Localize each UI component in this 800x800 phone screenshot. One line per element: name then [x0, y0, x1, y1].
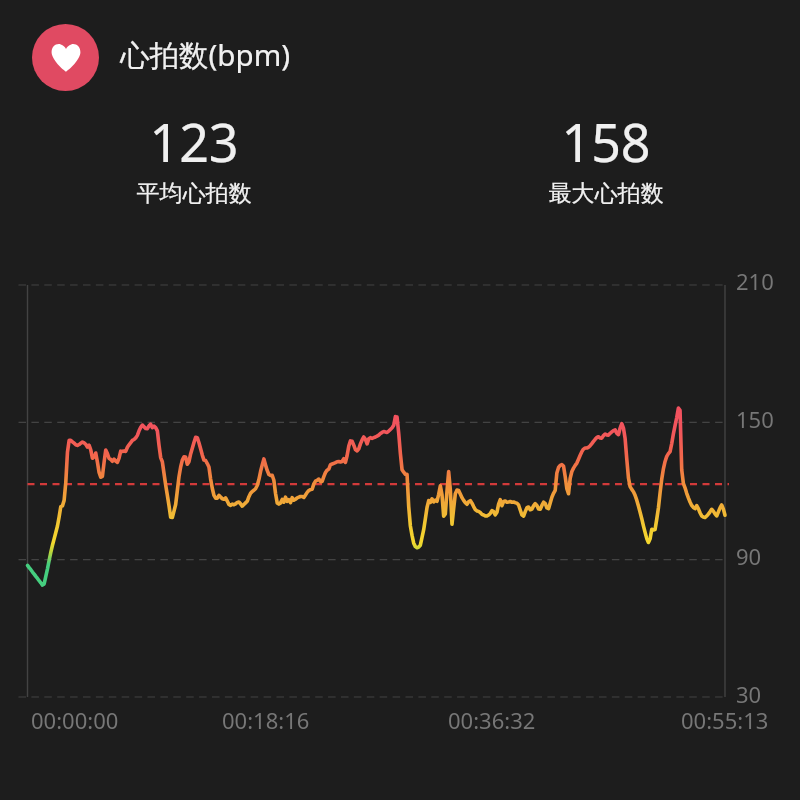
button[interactable]: Heart rate [32, 24, 322, 91]
staticText: 123 [64, 106, 324, 168]
staticText: 150 [736, 404, 774, 434]
staticText: 心拍数(bpm) [120, 34, 291, 74]
staticText: 最大心拍数 [476, 179, 736, 211]
staticText: 平均心拍数 [64, 179, 324, 211]
staticText: 30 [736, 679, 762, 709]
staticText: 00:18:16 [222, 705, 310, 735]
button[interactable]: 158 [476, 110, 736, 215]
staticText: 158 [476, 106, 736, 168]
staticText: 00:36:32 [448, 705, 536, 735]
button[interactable]: 123 [64, 110, 324, 215]
staticText: 90 [736, 541, 762, 571]
staticText: 210 [736, 266, 774, 296]
staticText: 00:55:13 [681, 705, 769, 735]
staticText: 00:00:00 [31, 705, 119, 735]
other: Heart rate [32, 24, 99, 91]
